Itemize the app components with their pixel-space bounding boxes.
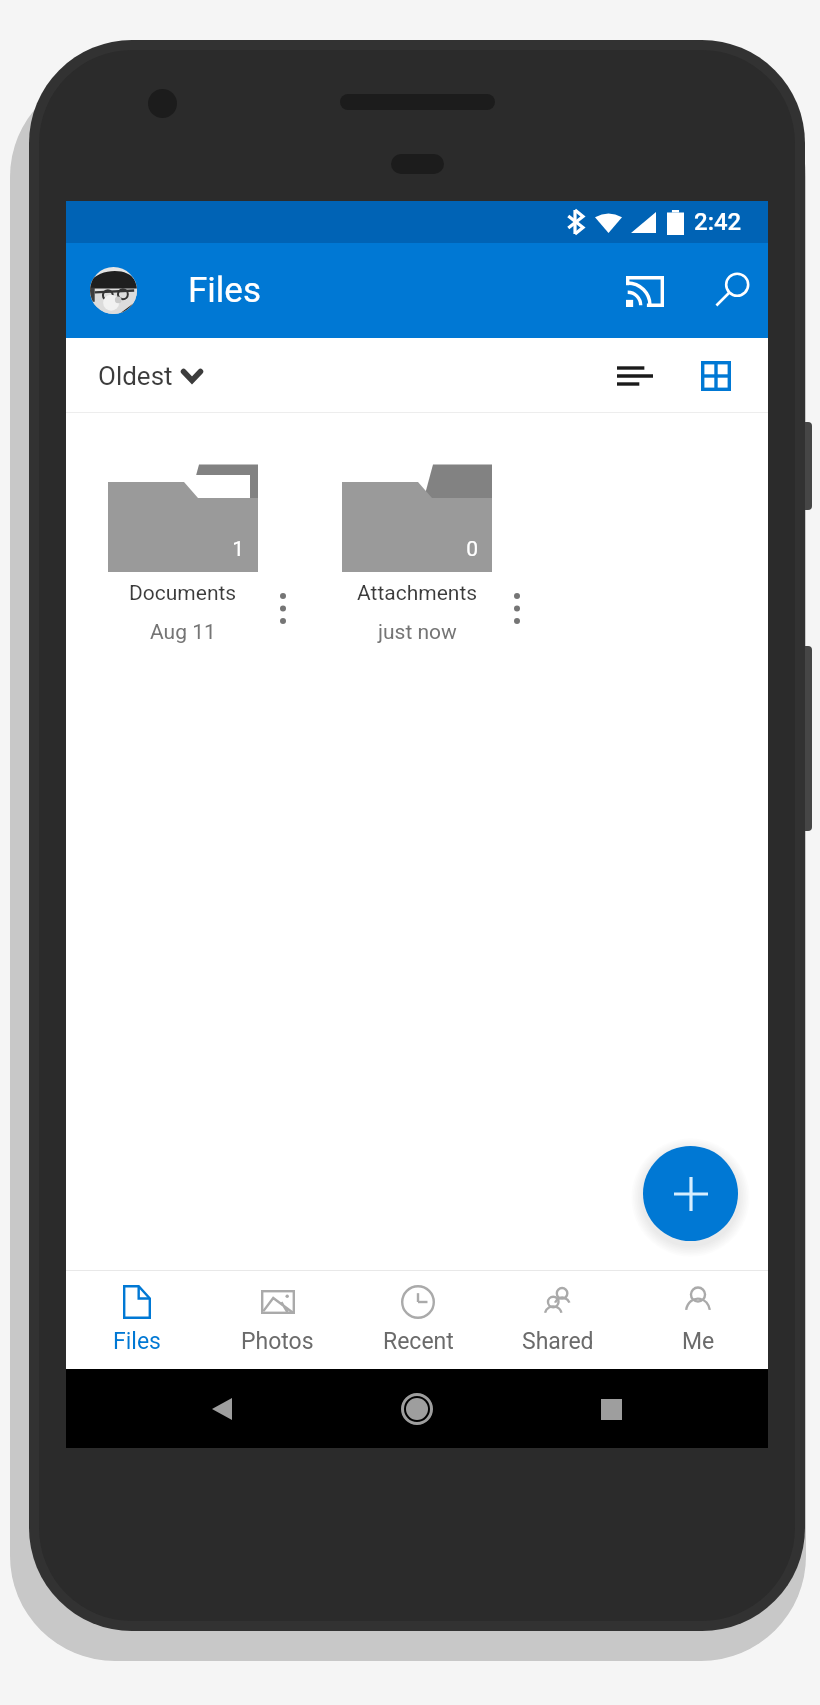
button[interactable]: Photos [207,1270,348,1355]
button[interactable]: Files [66,1270,207,1355]
button[interactable]: Cast [602,248,688,334]
button[interactable]: Shared [488,1270,628,1355]
staticText: Attachments [357,581,478,606]
button[interactable]: Recent apps [581,1379,641,1439]
staticText: 0 [342,537,478,562]
button[interactable]: Home [387,1379,447,1439]
button[interactable]: Grid view [681,341,751,411]
button[interactable]: Back [192,1379,252,1439]
staticText: just now [378,620,457,645]
button[interactable]: Recent [348,1270,488,1355]
button[interactable]: More options [256,581,310,635]
button[interactable]: Me [628,1270,768,1355]
button[interactable]: 1 [66,413,300,648]
staticText: Aug 11 [150,620,216,645]
staticText: Oldest [98,361,173,391]
staticText: Documents [129,581,237,606]
staticText: Photos [241,1328,314,1355]
button[interactable]: Sort [600,341,670,411]
button[interactable]: 0 [300,413,534,648]
staticText: 2:42 [694,208,742,236]
staticText: Files [113,1328,161,1355]
button[interactable]: More options [490,581,544,635]
staticText: Me [682,1328,715,1355]
staticText: 1 [108,537,244,562]
button[interactable]: Search [690,248,776,334]
button[interactable]: Oldest [98,361,203,391]
button[interactable]: Add [643,1146,738,1241]
staticText: Recent [383,1328,454,1355]
staticText: Files [188,270,261,311]
button[interactable]: Account [90,267,137,314]
staticText: Shared [522,1328,594,1355]
